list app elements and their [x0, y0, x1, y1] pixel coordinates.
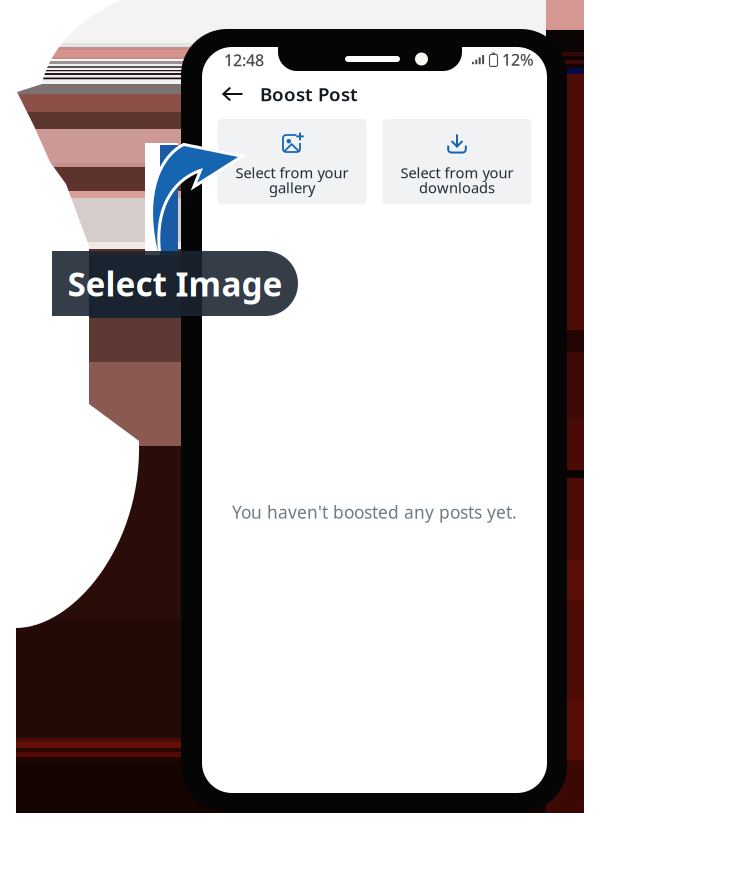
button[interactable]: Select from your — [217, 119, 366, 204]
staticText: gallery — [269, 178, 315, 197]
staticText: Select from your — [400, 163, 513, 182]
staticText: 12:48 — [224, 49, 264, 71]
staticText: You haven't boosted any posts yet. — [232, 500, 517, 523]
staticText: Select Image — [67, 261, 282, 306]
staticText: Boost Post — [260, 82, 358, 106]
staticText: downloads — [419, 178, 495, 197]
button[interactable]: Select from your — [382, 119, 531, 204]
staticText: 12% — [502, 49, 534, 70]
staticText: Select from your — [235, 163, 348, 182]
button[interactable]: Back — [218, 80, 248, 108]
